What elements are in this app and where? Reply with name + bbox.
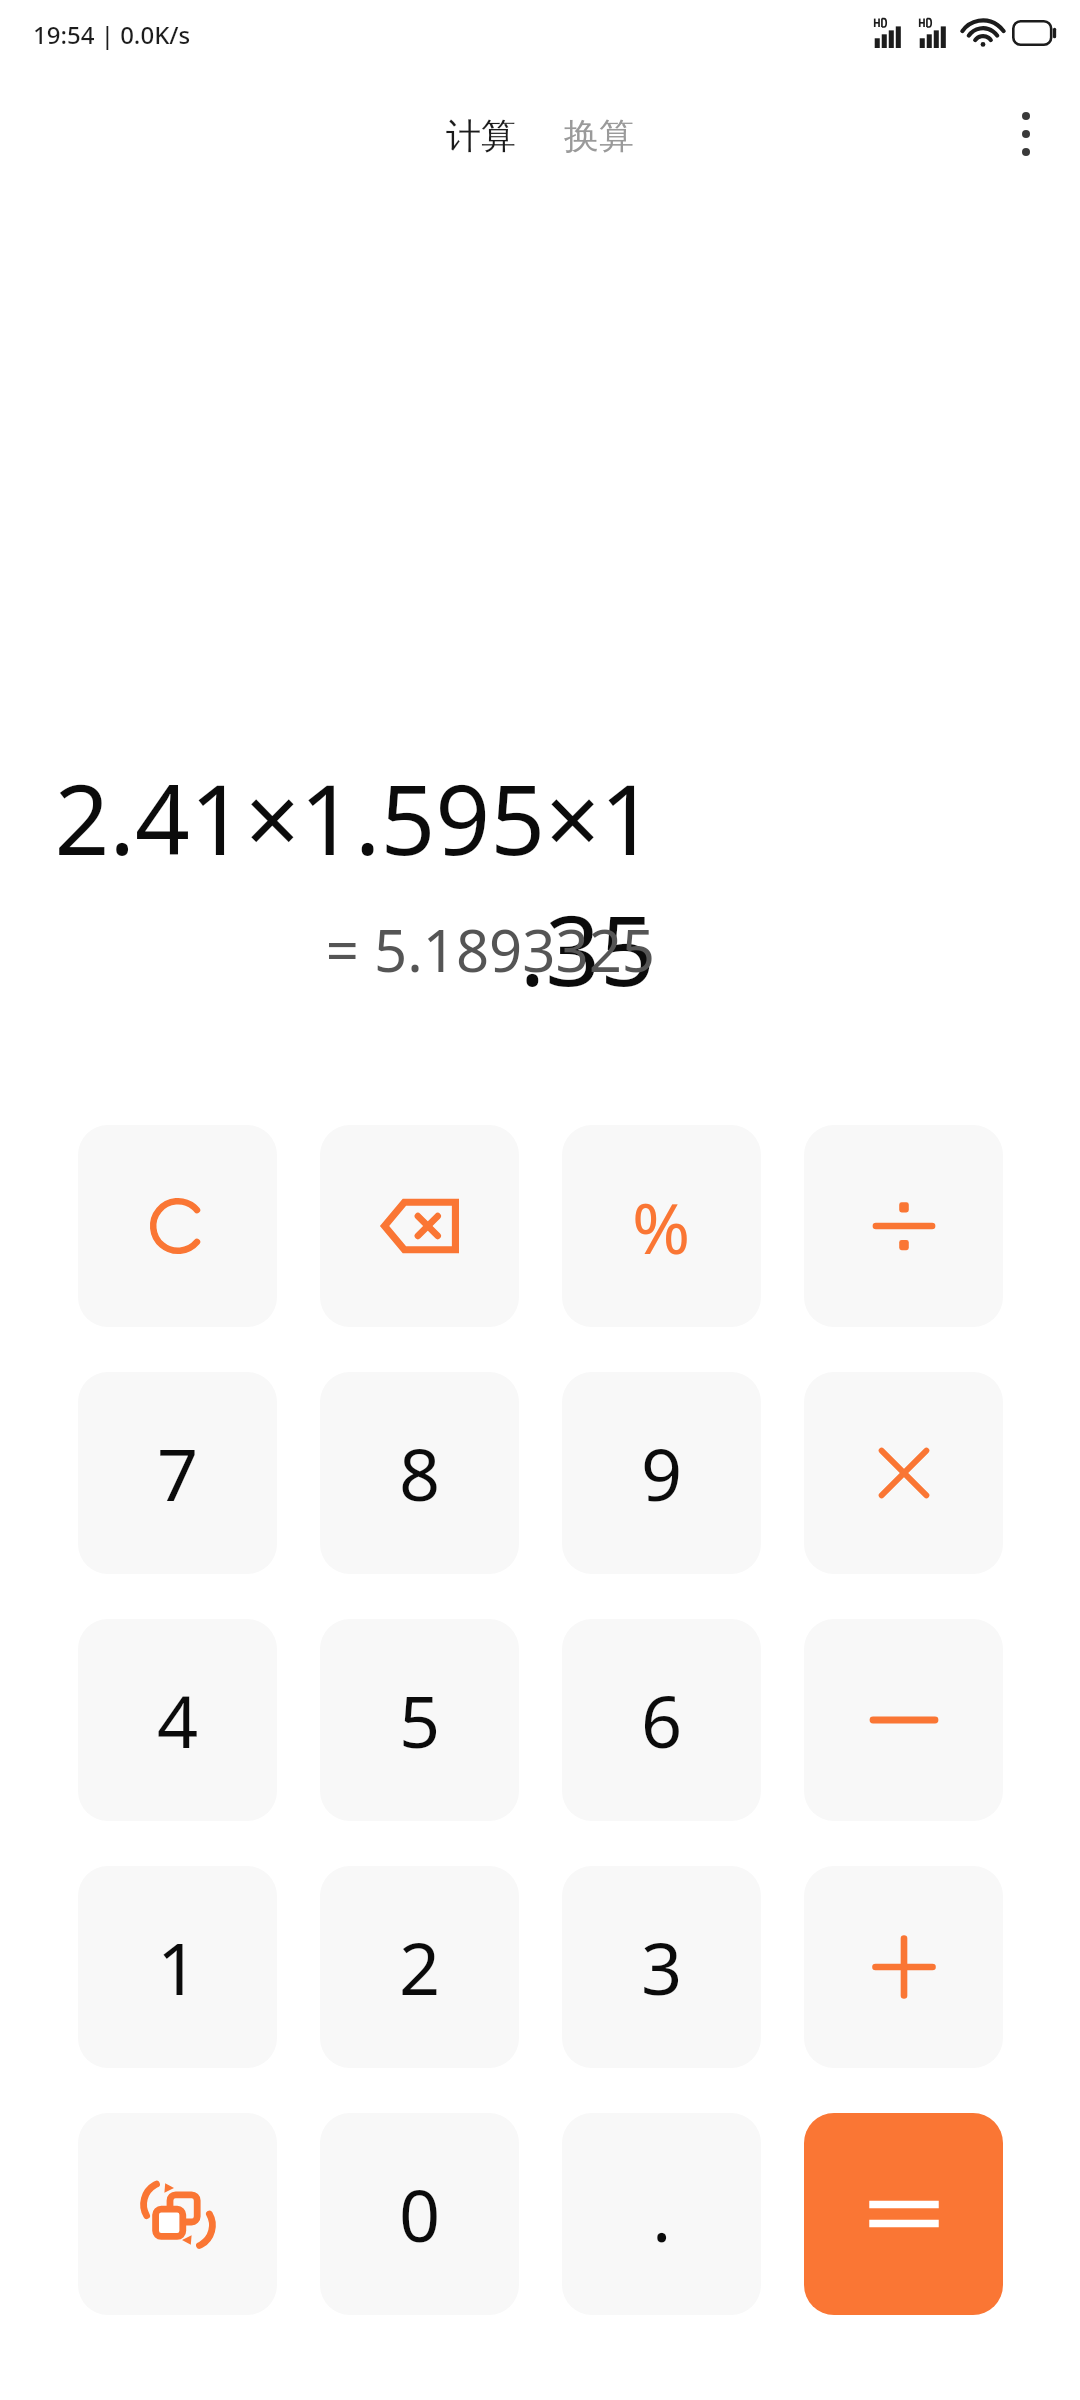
button[interactable]: Divide [804,1125,1003,1327]
staticText: 5 [399,1671,441,1769]
button[interactable]: 换算 [558,110,640,162]
button[interactable]: 5 [320,1619,519,1821]
button[interactable]: Plus [804,1866,1003,2068]
staticText: 计算 [446,114,516,158]
staticText: 8 [399,1424,441,1522]
button[interactable]: 1 [78,1866,277,2068]
button[interactable] [78,1125,277,1327]
button[interactable]: 3 [562,1866,761,2068]
staticText: 7 [157,1424,199,1522]
staticText: 1 [157,1918,199,2016]
button[interactable]: % [562,1125,761,1327]
staticText: 6 [641,1671,683,1769]
staticText: 2.41×1.595×1.35 [35,752,655,1014]
button[interactable]: 计算 [440,110,522,162]
button[interactable]: 2 [320,1866,519,2068]
button[interactable]: Minus [804,1619,1003,1821]
button[interactable]: 8 [320,1372,519,1574]
staticText: 换算 [564,114,634,158]
staticText: = 5.1893325 [35,910,655,989]
button[interactable]: . [562,2113,761,2315]
button[interactable]: More options [988,96,1064,172]
button[interactable]: Unit conversion [78,2113,277,2315]
button[interactable]: 7 [78,1372,277,1574]
button[interactable]: Backspace [320,1125,519,1327]
staticText: . [652,2165,672,2263]
button[interactable]: Equals [804,2113,1003,2315]
staticText: 0 [399,2165,441,2263]
button[interactable]: 0 [320,2113,519,2315]
staticText: 2 [399,1918,441,2016]
staticText: % [632,1179,691,1274]
staticText: 3 [641,1918,683,2016]
staticText: 19:54 | 0.0K/s [33,18,191,51]
staticText: 4 [157,1671,199,1769]
button[interactable]: 6 [562,1619,761,1821]
button[interactable]: 9 [562,1372,761,1574]
button[interactable]: Multiply [804,1372,1003,1574]
staticText: 9 [641,1424,683,1522]
button[interactable]: 4 [78,1619,277,1821]
